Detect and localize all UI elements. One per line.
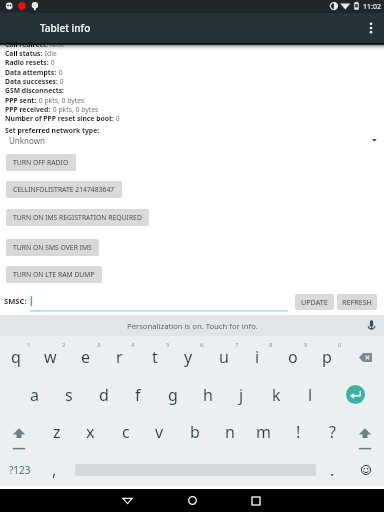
button[interactable]: m xyxy=(246,413,281,450)
staticText: p xyxy=(322,346,332,368)
button[interactable]: TURN ON SMS OVER IMS xyxy=(6,239,99,256)
staticText: TURN ON SMS OVER IMS xyxy=(13,243,92,252)
button[interactable]: Backspace xyxy=(346,339,384,376)
button[interactable]: j xyxy=(224,376,259,413)
button[interactable]: o xyxy=(275,339,310,376)
button[interactable]: ?123 xyxy=(0,450,38,486)
staticText: c xyxy=(122,421,130,443)
button[interactable]: d xyxy=(86,376,121,413)
staticText: 11:02 xyxy=(363,2,381,12)
button[interactable]: i xyxy=(240,339,275,376)
button[interactable]: . xyxy=(316,450,349,486)
staticText: 4 xyxy=(131,341,135,349)
button[interactable]: c xyxy=(108,413,143,450)
staticText: TURN ON LTE RAM DUMP xyxy=(13,270,95,279)
staticText: 0 pkts, 0 bytes xyxy=(37,96,85,105)
button[interactable]: Shift xyxy=(0,413,38,450)
staticText: l xyxy=(308,384,313,406)
staticText: PPP sent: xyxy=(5,96,37,105)
button[interactable]: b xyxy=(177,413,212,450)
button[interactable]: g xyxy=(155,376,190,413)
button[interactable]: Voice input xyxy=(358,315,384,336)
staticText: x xyxy=(86,421,95,443)
button[interactable]: Home xyxy=(176,489,208,512)
button[interactable]: k xyxy=(259,376,294,413)
staticText: . xyxy=(330,459,335,481)
staticText: Number of PPP reset since boot: xyxy=(5,114,114,123)
button[interactable]: p xyxy=(309,339,344,376)
staticText: 3 xyxy=(97,341,101,349)
staticText: w xyxy=(44,346,57,368)
button[interactable]: s xyxy=(51,376,86,413)
button[interactable]: Enter xyxy=(327,376,384,413)
button[interactable]: ? xyxy=(315,413,350,450)
button[interactable]: UPDATE xyxy=(295,294,334,310)
button[interactable]: ! xyxy=(281,413,316,450)
staticText: TURN OFF RADIO xyxy=(13,158,69,167)
staticText: k xyxy=(272,384,281,406)
staticText: Call status: xyxy=(5,49,43,58)
button[interactable]: Back xyxy=(111,489,143,512)
staticText: false xyxy=(48,40,65,49)
staticText: SMSC: xyxy=(4,296,27,306)
staticText: GSM disconnects: xyxy=(5,86,65,95)
button[interactable]: l xyxy=(293,376,328,413)
button[interactable]: y xyxy=(171,339,206,376)
staticText: e xyxy=(81,346,91,368)
button[interactable]: , xyxy=(38,450,71,486)
staticText: 1 xyxy=(27,341,31,349)
button[interactable]: TURN ON IMS REGISTRATION REQUIRED xyxy=(6,209,149,226)
staticText: z xyxy=(53,421,61,443)
button[interactable]: e xyxy=(68,339,103,376)
button[interactable]: z xyxy=(39,413,74,450)
button[interactable]: n xyxy=(212,413,247,450)
staticText: Data attempts: xyxy=(5,68,57,77)
button[interactable]: TURN OFF RADIO xyxy=(6,154,76,171)
staticText: r xyxy=(116,346,123,368)
staticText: 0 xyxy=(57,68,63,77)
button[interactable]: More options xyxy=(358,13,384,43)
staticText: 0 xyxy=(49,58,55,67)
staticText: u xyxy=(219,346,229,368)
button[interactable]: x xyxy=(73,413,108,450)
staticText: Unknown xyxy=(9,135,45,146)
button[interactable]: REFRESH xyxy=(337,294,377,310)
staticText: Personalization is on. Touch for info. xyxy=(127,321,258,331)
staticText: 0 xyxy=(58,77,64,86)
button[interactable]: f xyxy=(120,376,155,413)
button[interactable]: q xyxy=(0,339,33,376)
button[interactable]: t xyxy=(137,339,172,376)
staticText: Data successes: xyxy=(5,77,58,86)
staticText: 8 xyxy=(269,341,273,349)
staticText: REFRESH xyxy=(342,297,372,307)
staticText: Radio resets: xyxy=(5,58,49,67)
staticText: a xyxy=(30,384,39,406)
button[interactable]: u xyxy=(206,339,241,376)
staticText: ? xyxy=(329,421,336,443)
staticText: t xyxy=(152,346,158,368)
button[interactable]: TURN ON LTE RAM DUMP xyxy=(6,266,102,283)
staticText: m xyxy=(256,421,271,443)
button[interactable]: r xyxy=(102,339,137,376)
button[interactable]: v xyxy=(142,413,177,450)
button[interactable]: w xyxy=(33,339,68,376)
staticText: Set preferred network type: xyxy=(5,126,100,135)
staticText: ?123 xyxy=(9,463,31,477)
button[interactable]: CELLINFOLISTRATE 2147483647 xyxy=(6,181,122,198)
staticText: 9 xyxy=(304,341,308,349)
staticText: Tablet info xyxy=(40,21,91,35)
staticText: g xyxy=(168,384,178,406)
button[interactable]: Shift xyxy=(346,413,384,450)
staticText: TURN ON IMS REGISTRATION REQUIRED xyxy=(13,213,142,222)
button[interactable]: h xyxy=(190,376,225,413)
button[interactable]: Emoji xyxy=(348,450,384,486)
button[interactable]: a xyxy=(17,376,52,413)
staticText: 5 xyxy=(166,341,170,349)
staticText: 0 pkts, 0 bytes xyxy=(51,105,99,114)
staticText: CELLINFOLISTRATE 2147483647 xyxy=(13,185,115,194)
staticText: Idle xyxy=(43,49,57,58)
button[interactable]: Recent apps xyxy=(240,489,272,512)
staticText: 0 xyxy=(114,114,120,123)
button[interactable]: Personalization is on. Touch for info. xyxy=(127,321,258,331)
